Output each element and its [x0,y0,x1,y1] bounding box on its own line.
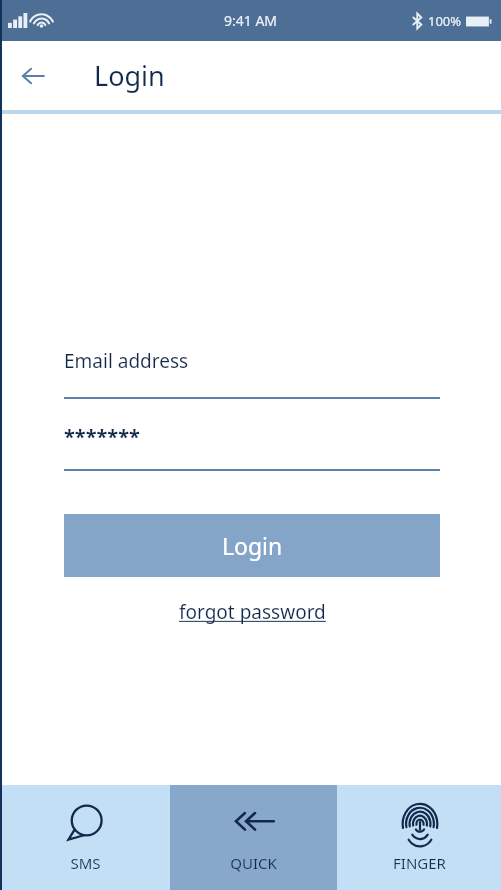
staticText: QUICK [230,853,277,873]
button[interactable]: QUICK [170,785,337,890]
button[interactable]: FINGER [337,785,501,890]
staticText: ******* [64,423,140,450]
staticText: Email address [64,348,189,374]
staticText: Login [222,530,283,561]
button[interactable]: forgot password [179,599,326,625]
staticText: SMS [70,853,101,873]
staticText: forgot password [179,599,326,625]
staticText: Login [94,57,165,94]
button[interactable]: SMS [0,785,170,890]
staticText: 9:41 AM [224,11,278,30]
staticText: FINGER [393,853,446,873]
staticText: 100% [428,12,462,30]
button[interactable]: Login [64,514,440,577]
button[interactable]: Back [10,53,56,99]
